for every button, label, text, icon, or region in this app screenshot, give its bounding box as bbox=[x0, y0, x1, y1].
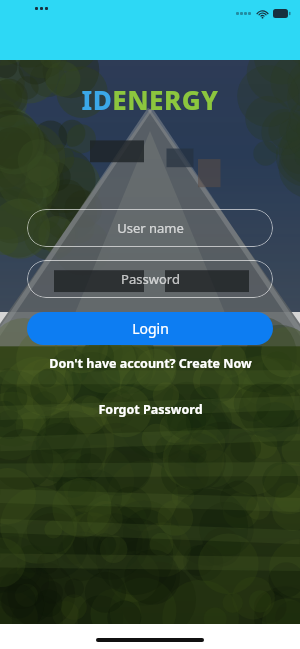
button[interactable]: User name bbox=[27, 209, 273, 247]
staticText: Password bbox=[121, 270, 180, 288]
staticText: Don't have account? Create Now bbox=[49, 355, 252, 372]
button[interactable]: Forgot Password bbox=[27, 401, 273, 418]
staticText: Forgot Password bbox=[98, 401, 203, 418]
button[interactable]: Login bbox=[27, 312, 273, 345]
staticText: Login bbox=[132, 319, 169, 338]
button[interactable]: Don't have account? Create Now bbox=[27, 355, 273, 372]
staticText: IDENERGY bbox=[27, 82, 273, 117]
staticText: User name bbox=[117, 219, 184, 237]
button[interactable]: Password bbox=[27, 260, 273, 298]
